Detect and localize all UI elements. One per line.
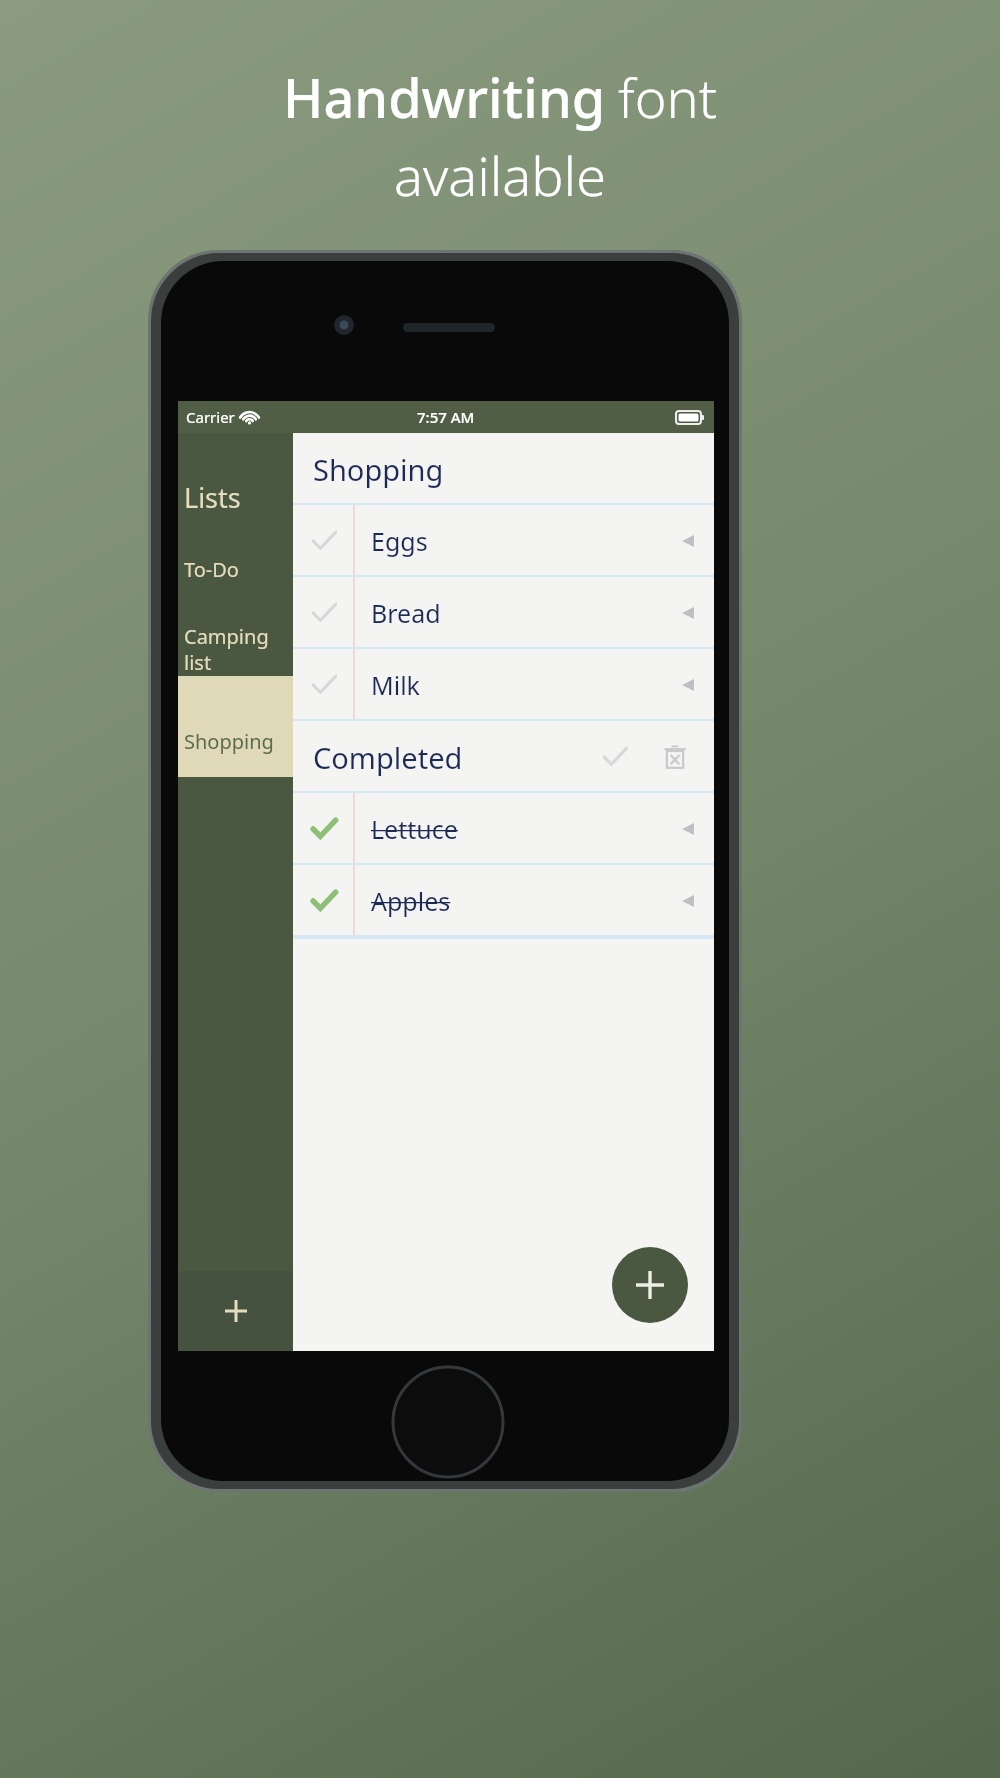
button[interactable]: Eggs [293,505,714,577]
button[interactable]: To-Do [178,516,293,583]
button[interactable]: Lists [178,433,293,516]
button[interactable]: Add list [178,1271,293,1351]
button[interactable]: Milk [293,649,714,721]
button[interactable]: Lettuce [293,793,714,865]
staticText: Shopping [184,728,274,755]
staticText: To-Do [184,556,239,583]
staticText: Camping list [184,623,269,676]
staticText: Shopping [313,450,444,489]
staticText: Carrier [186,407,235,427]
staticText: Milk [371,668,420,702]
button[interactable]: Apples [293,865,714,937]
staticText: Eggs [371,524,428,558]
staticText: Completed [313,738,463,777]
button[interactable]: Delete completed [658,740,692,774]
button[interactable]: Completed [293,721,714,793]
button[interactable]: Mark all complete [598,740,632,774]
staticText: Lists [184,479,241,516]
staticText: available [394,138,606,212]
staticText: font [618,60,718,134]
staticText: Bread [371,596,441,630]
button[interactable]: Bread [293,577,714,649]
staticText: Handwriting [283,60,606,134]
button[interactable]: Add item [612,1247,688,1323]
button[interactable]: Shopping [178,676,293,777]
staticText: Lettuce [371,812,458,846]
button[interactable]: Camping list [178,583,293,676]
staticText: 7:57 AM [417,407,475,427]
staticText: Apples [371,884,451,918]
button[interactable]: Shopping [293,433,714,505]
